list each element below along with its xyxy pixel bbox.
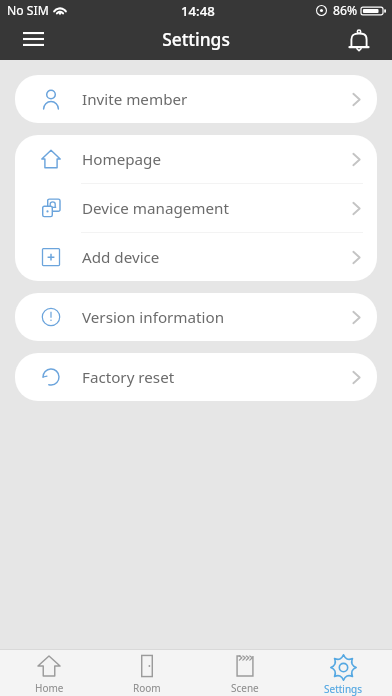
button[interactable]: Scene xyxy=(196,650,294,696)
button[interactable]: Version information xyxy=(15,293,377,341)
staticText: Settings xyxy=(324,682,363,696)
button[interactable]: Room xyxy=(98,650,196,696)
staticText: 86% xyxy=(333,2,358,19)
button[interactable]: Settings xyxy=(294,650,392,696)
staticText: Factory reset xyxy=(82,367,175,388)
staticText: Homepage xyxy=(82,149,161,170)
staticText: Scene xyxy=(231,681,259,695)
button[interactable]: Homepage xyxy=(15,135,377,183)
staticText: Invite member xyxy=(82,89,188,110)
staticText: Room xyxy=(133,681,161,695)
staticText: Home xyxy=(35,681,64,695)
button[interactable]: Invite member xyxy=(15,75,377,123)
staticText: No SIM xyxy=(7,2,49,19)
staticText: Version information xyxy=(82,307,225,328)
button[interactable]: Add device xyxy=(15,233,377,281)
button[interactable]: Factory reset xyxy=(15,353,377,401)
staticText: Add device xyxy=(82,247,160,268)
button[interactable]: Notifications xyxy=(340,21,378,59)
button[interactable]: Home xyxy=(0,650,98,696)
staticText: Device management xyxy=(82,198,229,219)
button[interactable]: Menu xyxy=(14,20,52,58)
staticText: 14:48 xyxy=(181,2,215,20)
button[interactable]: Device management xyxy=(15,184,377,232)
staticText: Settings xyxy=(162,27,230,51)
